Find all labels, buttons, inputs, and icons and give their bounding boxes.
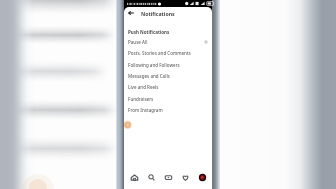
button[interactable]: Home: [126, 163, 143, 189]
staticText: Pause All: [128, 39, 148, 45]
staticText: Messages and Calls: [128, 73, 170, 79]
staticText: Fundraisers: [128, 96, 154, 102]
button[interactable]: Fundraisers: [124, 93, 212, 104]
button[interactable]: Messages and Calls: [124, 70, 212, 81]
button[interactable]: Reels: [160, 163, 177, 189]
button[interactable]: Search: [143, 163, 160, 189]
staticText: Notifications: [141, 10, 175, 17]
staticText: Following and Followers: [128, 62, 180, 68]
button[interactable]: Likes: [177, 163, 194, 189]
button[interactable]: Profile: [194, 163, 211, 189]
button[interactable]: Back: [126, 7, 135, 19]
staticText: Live and Reels: [128, 84, 159, 90]
button[interactable]: Posts, Stories and Comments: [124, 47, 212, 58]
staticText: Posts, Stories and Comments: [128, 50, 191, 56]
staticText: Push Notifications: [128, 29, 170, 35]
button[interactable]: From Instagram: [124, 104, 212, 115]
button[interactable]: Pause All: [124, 36, 212, 47]
button[interactable]: Live and Reels: [124, 81, 212, 92]
staticText: From Instagram: [128, 107, 163, 113]
button[interactable]: Following and Followers: [124, 59, 212, 70]
